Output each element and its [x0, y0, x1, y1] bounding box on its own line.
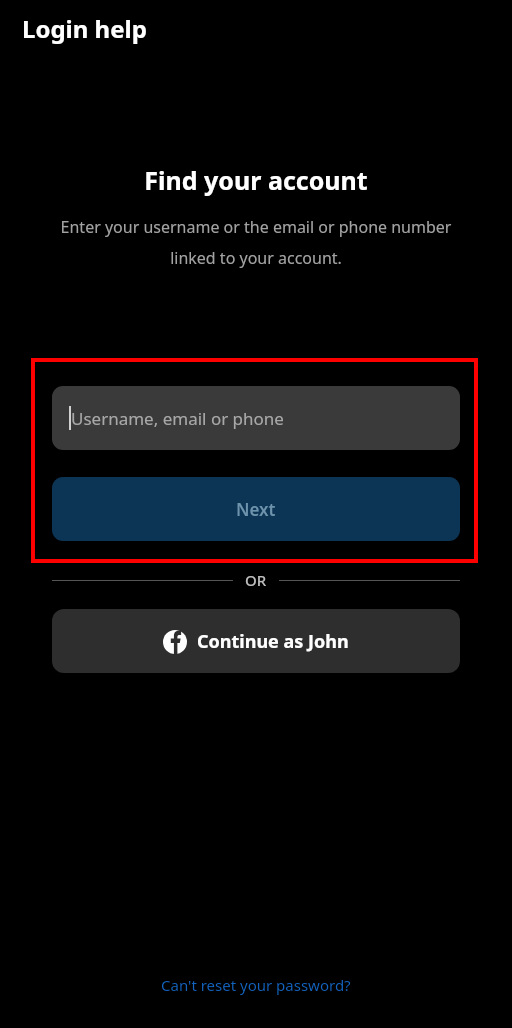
staticText: Next: [236, 498, 276, 521]
staticText: Username, email or phone: [71, 407, 284, 430]
button[interactable]: Continue as John: [52, 609, 460, 673]
staticText: Login help: [22, 12, 147, 45]
staticText: Enter your username or the email or phon…: [56, 216, 456, 268]
button[interactable]: Can't reset your password?: [153, 972, 359, 998]
staticText: Can't reset your password?: [161, 975, 351, 995]
staticText: Continue as John: [197, 629, 349, 654]
staticText: Find your account: [144, 163, 368, 197]
staticText: OR: [245, 570, 267, 590]
button[interactable]: Username, email or phone: [52, 386, 460, 450]
button[interactable]: Next: [52, 477, 460, 541]
